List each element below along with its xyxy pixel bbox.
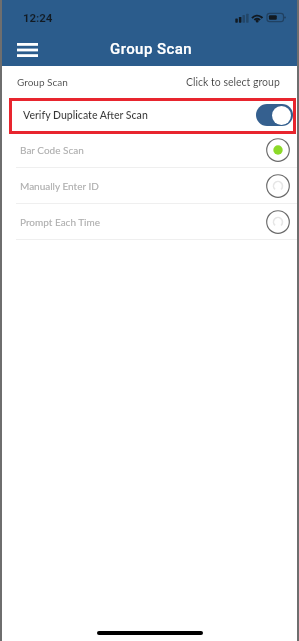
staticText: Bar Code Scan bbox=[20, 144, 84, 156]
button[interactable]: Click to select group bbox=[186, 76, 280, 89]
button[interactable]: Prompt Each Time bbox=[2, 204, 297, 239]
staticText: Verify Duplicate After Scan bbox=[23, 109, 148, 122]
button[interactable]: Bar Code Scan bbox=[2, 132, 297, 167]
staticText: Manually Enter ID bbox=[20, 180, 99, 192]
button[interactable]: Verify Duplicate After Scan bbox=[2, 98, 297, 132]
button[interactable]: Open navigation menu bbox=[11, 33, 44, 66]
button[interactable]: Verify Duplicate After Scan bbox=[256, 104, 293, 126]
staticText: 12:24 bbox=[23, 11, 53, 24]
staticText: Prompt Each Time bbox=[20, 216, 101, 228]
staticText: Group Scan bbox=[110, 40, 193, 58]
staticText: Group Scan bbox=[17, 76, 68, 88]
button[interactable]: Manually Enter ID bbox=[2, 168, 297, 203]
